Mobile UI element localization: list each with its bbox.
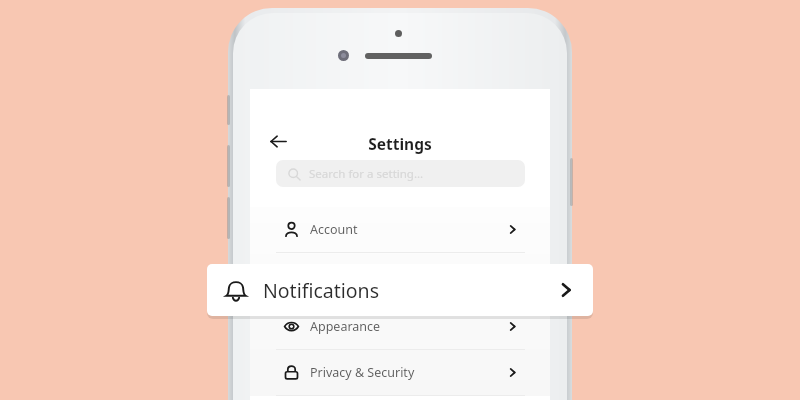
button[interactable]: Back [262,125,294,157]
staticText: Account [310,221,358,238]
button[interactable]: Appearance [250,304,550,349]
staticText: Notifications [263,277,379,304]
button[interactable]: Search for a setting... [276,160,525,187]
button[interactable]: Account [250,207,550,252]
button[interactable]: Notifications [207,264,593,316]
staticText: Privacy & Security [310,364,415,381]
staticText: Appearance [310,318,381,335]
button[interactable]: Privacy & Security [250,350,550,395]
staticText: Settings [250,133,550,154]
staticText: Search for a setting... [309,166,424,182]
